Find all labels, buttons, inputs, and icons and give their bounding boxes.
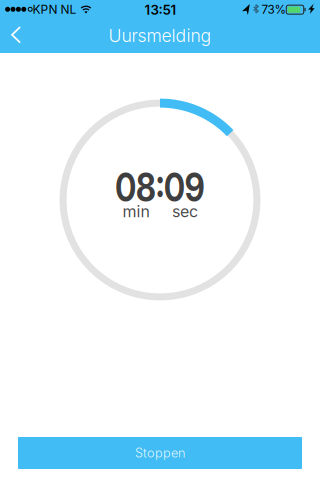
staticText: 73%	[261, 2, 286, 17]
staticText: Uursmelding	[108, 25, 211, 46]
staticText: sec	[172, 202, 198, 221]
staticText: Stoppen	[135, 445, 185, 461]
button[interactable]: Back	[0, 24, 44, 45]
staticText: min	[122, 202, 149, 221]
staticText: 13:51	[144, 2, 176, 18]
staticText: KPN NL	[32, 2, 76, 17]
button[interactable]: Stoppen	[18, 437, 302, 469]
staticText: 08:09	[104, 163, 216, 211]
